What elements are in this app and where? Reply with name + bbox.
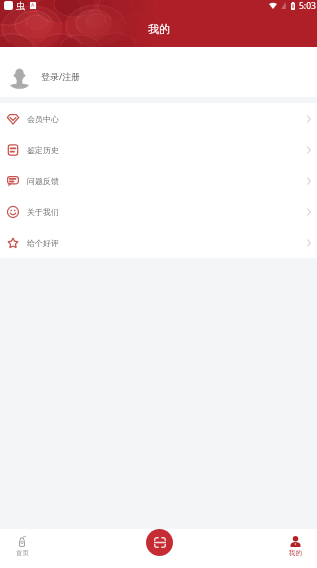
button[interactable]: 问题反馈 — [0, 165, 317, 196]
staticText: 首页 — [16, 549, 29, 557]
button[interactable]: 我的 — [274, 529, 317, 568]
button[interactable]: 给个好评 — [0, 227, 317, 258]
staticText: A — [31, 2, 35, 9]
staticText: 虫 — [16, 0, 25, 11]
button[interactable]: 会员中心 — [0, 103, 317, 134]
staticText: 会员中心 — [27, 114, 59, 124]
staticText: 关于我们 — [27, 207, 59, 217]
staticText: 登录/注册 — [41, 70, 81, 82]
button[interactable]: 关于我们 — [0, 196, 317, 227]
button[interactable]: 鉴定历史 — [0, 134, 317, 165]
staticText: 鉴定历史 — [27, 145, 59, 155]
staticText: 问题反馈 — [27, 176, 59, 186]
staticText: 我的 — [289, 549, 302, 557]
staticText: 我的 — [148, 22, 170, 36]
button[interactable]: 登录/注册 — [0, 47, 317, 97]
staticText: 给个好评 — [27, 238, 59, 248]
staticText: 5:03 — [299, 0, 316, 11]
button[interactable]: Scan — [146, 529, 173, 556]
button[interactable]: 首页 — [0, 529, 44, 568]
